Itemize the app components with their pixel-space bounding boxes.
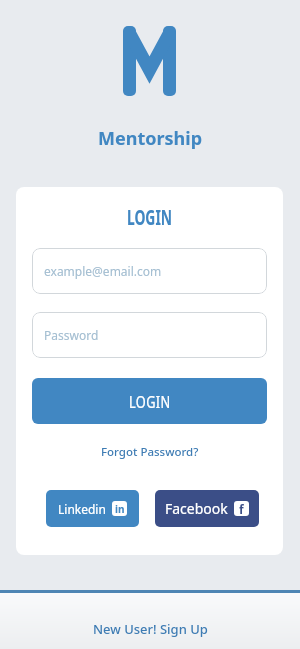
staticText: example@email.com — [44, 263, 162, 279]
button[interactable]: Linkedin — [46, 490, 139, 527]
staticText: f — [239, 501, 244, 516]
button[interactable]: LOGIN — [32, 378, 267, 424]
button[interactable]: New User! Sign Up — [93, 620, 208, 638]
button[interactable]: Password — [32, 312, 267, 358]
staticText: in — [115, 502, 125, 516]
button[interactable]: Facebook — [155, 490, 259, 527]
button[interactable]: example@email.com — [32, 248, 267, 294]
staticText: LOGIN — [129, 390, 171, 413]
staticText: Linkedin — [58, 501, 106, 517]
button[interactable]: Forgot Password? — [101, 444, 199, 460]
staticText: Mentorship — [0, 126, 300, 151]
staticText: LOGIN — [61, 203, 238, 232]
staticText: Password — [44, 327, 99, 343]
staticText: Facebook — [165, 499, 228, 518]
